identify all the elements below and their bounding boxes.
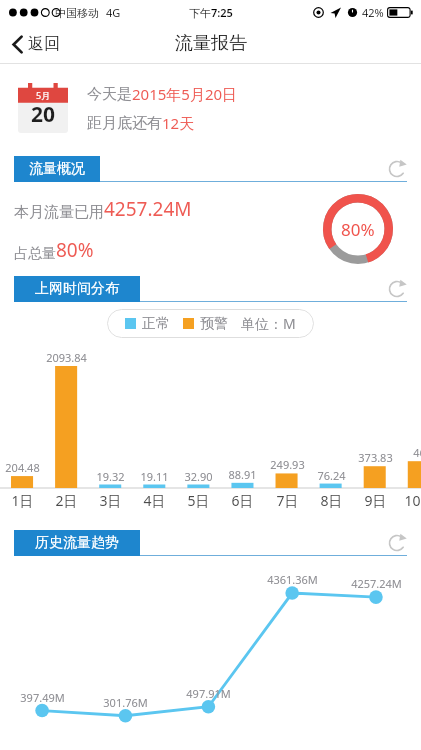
staticText: 2015年5月20日 bbox=[132, 84, 238, 104]
staticText: 10日 bbox=[404, 491, 421, 510]
staticText: 正常 bbox=[142, 315, 170, 333]
staticText: 9日 bbox=[364, 491, 387, 510]
staticText: 373.83 bbox=[358, 450, 393, 465]
staticText: 5月 bbox=[36, 89, 51, 101]
staticText: 占总量 bbox=[14, 245, 56, 263]
button[interactable]: 正常 bbox=[107, 309, 314, 338]
staticText: 7日 bbox=[276, 491, 299, 510]
staticText: 46 bbox=[413, 445, 421, 460]
staticText: 今天是 bbox=[87, 85, 132, 104]
staticText: 5日 bbox=[187, 491, 210, 510]
staticText: 19.11 bbox=[140, 469, 169, 484]
staticText: 6日 bbox=[231, 491, 254, 510]
staticText: 中国移动 bbox=[55, 6, 99, 20]
button[interactable]: 流量概况 bbox=[14, 156, 100, 182]
button[interactable]: 上网时间分布 bbox=[14, 276, 140, 302]
staticText: 单位：M bbox=[241, 314, 296, 333]
staticText: 204.48 bbox=[5, 460, 40, 475]
staticText: 流量概况 bbox=[29, 160, 85, 178]
staticText: 4257.24M bbox=[104, 196, 192, 222]
staticText: 4257.24M bbox=[351, 576, 402, 591]
staticText: 80% bbox=[56, 237, 94, 263]
staticText: 4日 bbox=[143, 491, 166, 510]
button[interactable]: 刷新 bbox=[386, 278, 408, 300]
staticText: 80% bbox=[341, 218, 375, 241]
staticText: 4361.36M bbox=[267, 572, 318, 587]
staticText: 12天 bbox=[162, 113, 195, 133]
staticText: 2日 bbox=[55, 491, 78, 510]
staticText: 76.24 bbox=[317, 468, 346, 483]
staticText: 历史流量趋势 bbox=[35, 534, 119, 552]
staticText: 301.76M bbox=[103, 695, 148, 710]
staticText: 4G bbox=[106, 5, 121, 20]
staticText: 上网时间分布 bbox=[35, 280, 119, 298]
button[interactable]: 刷新 bbox=[386, 158, 408, 180]
staticText: 42% bbox=[362, 5, 384, 20]
staticText: 20 bbox=[31, 100, 56, 129]
staticText: 下午7:25 bbox=[189, 5, 233, 20]
staticText: 249.93 bbox=[270, 457, 305, 472]
staticText: 8日 bbox=[320, 491, 343, 510]
staticText: 397.49M bbox=[20, 690, 65, 705]
staticText: 3日 bbox=[99, 491, 122, 510]
staticText: 1日 bbox=[11, 491, 34, 510]
button[interactable]: 历史流量趋势 bbox=[14, 530, 140, 556]
staticText: 返回 bbox=[28, 34, 60, 54]
staticText: 距月底还有 bbox=[87, 114, 162, 133]
staticText: 32.90 bbox=[184, 469, 213, 484]
staticText: 2093.84 bbox=[46, 350, 87, 365]
staticText: 19.32 bbox=[96, 469, 125, 484]
staticText: 88.91 bbox=[228, 467, 257, 482]
staticText: 预警 bbox=[200, 315, 228, 333]
staticText: 497.91M bbox=[186, 686, 231, 701]
button[interactable]: 刷新 bbox=[386, 532, 408, 554]
button[interactable]: 返回 bbox=[0, 27, 74, 61]
staticText: 本月流量已用 bbox=[14, 203, 104, 222]
staticText: 流量报告 bbox=[175, 32, 247, 55]
